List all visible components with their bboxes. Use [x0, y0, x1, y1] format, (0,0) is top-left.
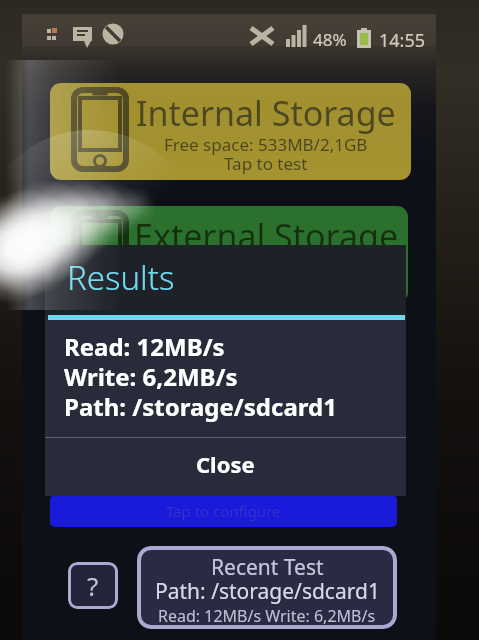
staticText: Free space: 533MB/2,1GB	[164, 133, 368, 156]
button[interactable]: Recent Test	[137, 546, 397, 629]
staticText: Write: 6,2MB/s	[64, 360, 238, 393]
button[interactable]: Close	[45, 438, 406, 496]
staticText: 48%	[313, 28, 347, 51]
staticText: Path: /storage/sdcard1	[64, 390, 337, 423]
staticText: Close	[196, 449, 255, 479]
staticText: Tap to test	[224, 152, 308, 175]
button[interactable]: Help	[68, 562, 118, 609]
staticText: 14:55	[379, 28, 426, 53]
staticText: Results	[67, 255, 175, 300]
staticText: Read: 12MB/s Write: 6,2MB/s	[158, 605, 376, 627]
staticText: External Storage	[134, 213, 399, 259]
staticText: Free space: 1,2GB/7,4GB	[168, 256, 364, 279]
button[interactable]: Internal Storage	[50, 83, 411, 180]
staticText: Path: /storage/sdcard1	[155, 577, 380, 606]
staticText: ?	[87, 568, 99, 603]
staticText: Read: 12MB/s	[64, 330, 225, 363]
button[interactable]: Tap to configure	[50, 495, 397, 527]
staticText: Internal Storage	[136, 90, 396, 136]
button[interactable]: External Storage	[50, 206, 408, 303]
staticText: Tap to configure	[166, 501, 281, 521]
staticText: Recent Test	[211, 553, 324, 582]
